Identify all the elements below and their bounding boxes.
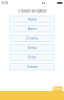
button[interactable]: Alpha [10,16,54,22]
staticText: 9:41 [1,1,7,5]
button[interactable]: Bravo [10,25,54,32]
button[interactable]: Next [52,86,62,91]
staticText: Choose an option [17,9,46,13]
button[interactable]: Foxtrot [10,63,54,70]
button[interactable]: Charlie [10,35,54,41]
staticText: Echo [28,55,36,59]
button[interactable]: Delta [10,44,54,51]
staticText: Alpha [27,17,36,21]
staticText: Bravo [27,27,36,31]
staticText: Delta [27,46,36,50]
staticText: Foxtrot [26,65,37,69]
button[interactable]: Echo [10,54,54,60]
staticText: Next [53,87,61,91]
staticText: Charlie [26,36,38,40]
